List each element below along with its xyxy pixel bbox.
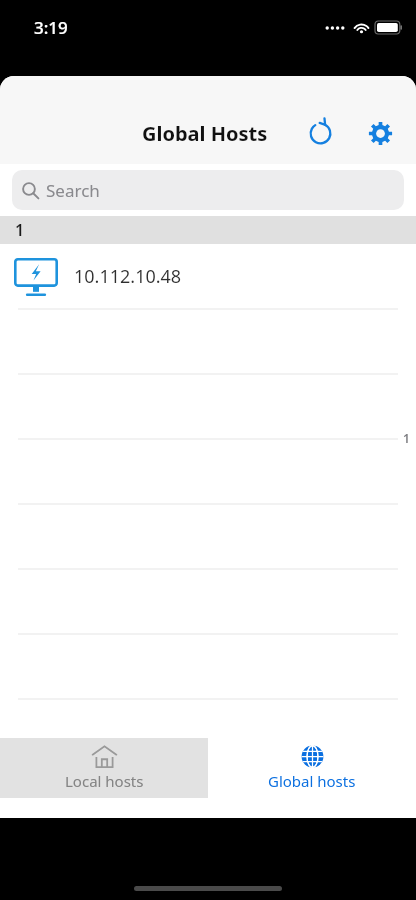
staticText: 1 bbox=[15, 219, 25, 241]
button[interactable]: 10.112.10.48 bbox=[0, 244, 416, 309]
staticText: Local hosts bbox=[65, 771, 144, 791]
staticText: 10.112.10.48 bbox=[74, 264, 182, 289]
button[interactable]: Settings bbox=[358, 111, 402, 155]
button[interactable]: Search bbox=[12, 170, 404, 210]
staticText: Global hosts bbox=[268, 771, 356, 791]
button[interactable]: Local hosts bbox=[0, 738, 208, 798]
button[interactable]: Refresh bbox=[298, 111, 342, 155]
staticText: 3:19 bbox=[34, 16, 68, 39]
staticText: Global Hosts bbox=[142, 120, 268, 147]
button[interactable]: 1 bbox=[403, 430, 410, 446]
button[interactable]: Global hosts bbox=[208, 738, 416, 798]
staticText: Search bbox=[46, 179, 100, 202]
